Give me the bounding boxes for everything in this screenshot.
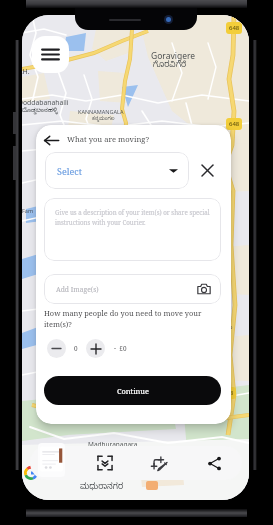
button[interactable]: Close	[198, 161, 216, 179]
button[interactable]: Add Image(s)	[44, 274, 221, 304]
button[interactable]: Markup	[132, 446, 187, 480]
staticText: ಗೊರವಿಗೆರೆ	[153, 61, 187, 72]
staticText: What you are moving?	[67, 134, 150, 144]
staticText: ಸಮ	[222, 325, 233, 332]
staticText: AH.	[22, 67, 30, 77]
other: Camera	[197, 282, 211, 296]
staticText: ದೊಡ್ಡಬಾನಹಳ್ಳಿ	[22, 107, 58, 115]
staticText: 0	[74, 344, 78, 353]
staticText: ಂದು	[214, 277, 227, 284]
button[interactable]: Decrease	[47, 339, 66, 358]
staticText: 648	[229, 24, 240, 32]
staticText: Madhuranagara	[88, 440, 138, 449]
button[interactable]: Screenshot preview	[38, 443, 65, 477]
staticText: Doddabanahalli	[22, 98, 69, 107]
button[interactable]: Continue	[44, 376, 221, 405]
button[interactable]: Share	[187, 446, 242, 480]
staticText: Sam	[218, 317, 232, 326]
staticText: Give us a description of your item(s) or…	[55, 208, 213, 226]
staticText: - £0	[114, 344, 127, 353]
staticText: 648	[223, 389, 234, 397]
staticText: KANNAMANGALA	[78, 108, 124, 115]
staticText: How many people do you need to move your…	[44, 308, 222, 329]
staticText: ಕನ್ನಮಂಗಲ	[92, 116, 115, 123]
staticText: Goravigere	[151, 50, 196, 62]
button[interactable]: Menu	[32, 36, 69, 73]
staticText: ಮಧುರಾನಗರ	[80, 483, 124, 494]
staticText: Continue	[117, 386, 149, 396]
staticText: Add Image(s)	[56, 285, 99, 294]
button[interactable]: Increase	[86, 339, 105, 358]
button[interactable]: Select	[45, 152, 189, 189]
button[interactable]: Lens	[78, 446, 132, 480]
staticText: 648	[229, 120, 240, 128]
button[interactable]: Back	[42, 131, 60, 149]
staticText: Select	[57, 165, 82, 177]
button[interactable]: Give us a description of your item(s) or…	[44, 198, 221, 261]
staticText: Fam	[22, 207, 34, 214]
